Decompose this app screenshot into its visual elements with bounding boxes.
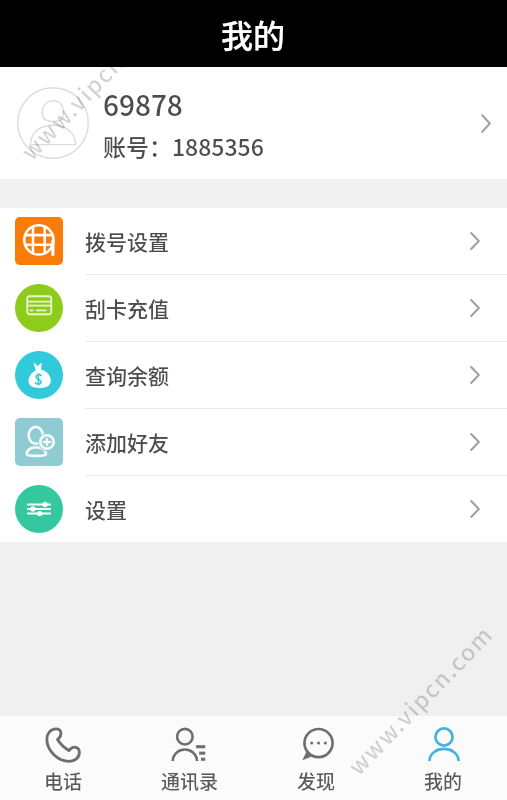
button[interactable]: 添加好友 bbox=[0, 409, 507, 475]
button[interactable]: 设置 bbox=[0, 476, 507, 542]
staticText: 添加好友 bbox=[85, 427, 169, 457]
button[interactable]: 电话 bbox=[0, 716, 126, 800]
staticText: 通讯录 bbox=[161, 767, 219, 795]
button[interactable]: 69878 bbox=[0, 67, 507, 179]
button[interactable]: 我的 bbox=[380, 716, 507, 800]
button[interactable]: 拨号设置 bbox=[0, 208, 507, 274]
button[interactable]: 刮卡充值 bbox=[0, 275, 507, 341]
staticText: 查询余额 bbox=[85, 360, 169, 390]
button[interactable]: 通讯录 bbox=[126, 716, 253, 800]
staticText: 刮卡充值 bbox=[85, 293, 169, 323]
staticText: 电话 bbox=[44, 767, 83, 795]
staticText: 账号：1885356 bbox=[103, 129, 264, 162]
staticText: 我的 bbox=[424, 767, 463, 795]
staticText: 我的 bbox=[221, 11, 286, 57]
staticText: 设置 bbox=[85, 494, 127, 524]
staticText: 发现 bbox=[297, 767, 336, 795]
staticText: 69878 bbox=[103, 84, 183, 125]
staticText: www.vipcn.com bbox=[339, 617, 499, 781]
staticText: 拨号设置 bbox=[85, 226, 169, 256]
staticText: www.vipcn.com bbox=[12, 2, 172, 166]
button[interactable]: 发现 bbox=[253, 716, 380, 800]
button[interactable]: 查询余额 bbox=[0, 342, 507, 408]
